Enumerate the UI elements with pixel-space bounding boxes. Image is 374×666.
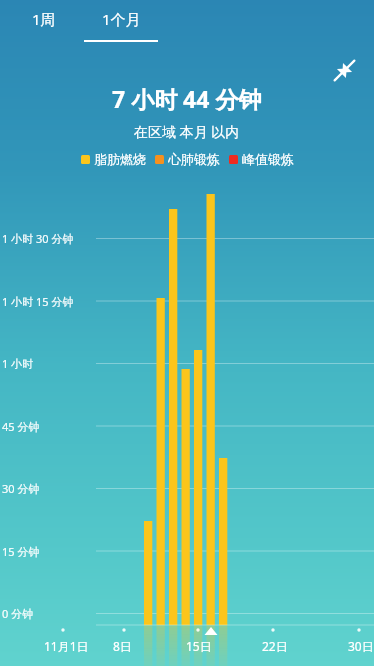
staticText: 脂肪燃烧	[94, 151, 146, 167]
staticText: 在区域 本月 以内	[134, 122, 240, 141]
staticText: 15日	[186, 638, 212, 654]
staticText: 22日	[262, 638, 288, 654]
button[interactable]: 峰值锻炼	[229, 151, 294, 167]
staticText: 1 小时	[2, 356, 34, 371]
button[interactable]: 1个月	[80, 9, 162, 42]
button[interactable]: 1周	[8, 9, 80, 42]
button[interactable]: Collapse chart	[328, 54, 360, 86]
staticText: 1 小时 15 分钟	[2, 294, 74, 309]
button[interactable]: 心肺锻炼	[155, 151, 220, 167]
staticText: 0 分钟	[2, 606, 34, 621]
staticText: 峰值锻炼	[242, 151, 294, 167]
staticText: 30 分钟	[2, 481, 40, 496]
staticText: 30日	[348, 638, 374, 654]
staticText: 11月1日	[44, 638, 89, 654]
button[interactable]: 脂肪燃烧	[81, 151, 146, 167]
staticText: 7 小时 44 分钟	[112, 83, 262, 114]
staticText: 8日	[113, 638, 132, 654]
staticText: 45 分钟	[2, 419, 40, 434]
staticText: 1个月	[102, 9, 141, 29]
staticText: 1周	[32, 9, 56, 29]
staticText: 15 分钟	[2, 544, 40, 559]
staticText: 1 小时 30 分钟	[2, 231, 74, 246]
staticText: 心肺锻炼	[168, 151, 220, 167]
